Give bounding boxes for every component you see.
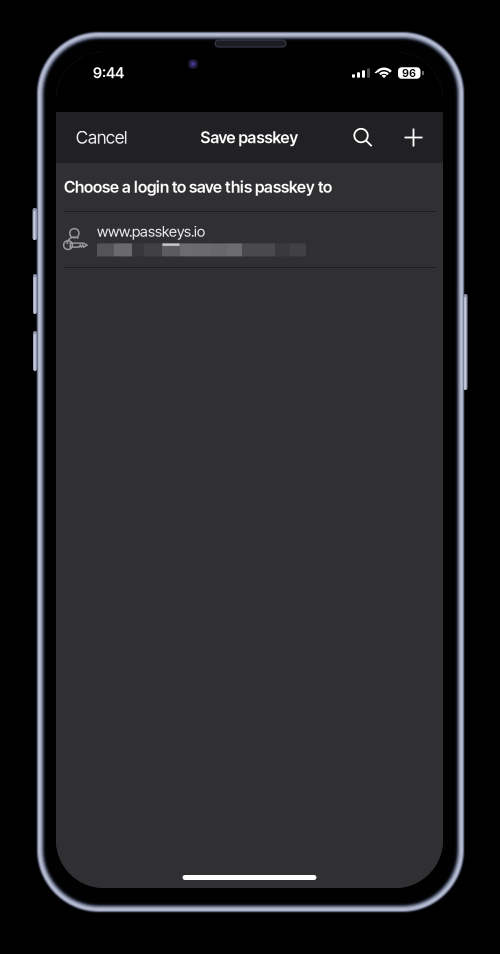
button[interactable]: Search (338, 112, 388, 163)
button[interactable]: www.passkeys.io (56, 212, 443, 267)
staticText: Save passkey (200, 128, 298, 147)
staticText: 96 (402, 66, 416, 79)
button[interactable]: Cancel (70, 112, 133, 163)
staticText: Cancel (76, 127, 127, 148)
staticText: 9:44 (93, 64, 124, 82)
staticText: Choose a login to save this passkey to (64, 177, 332, 197)
staticText: www.passkeys.io (97, 223, 205, 240)
button[interactable]: Add (388, 112, 439, 163)
